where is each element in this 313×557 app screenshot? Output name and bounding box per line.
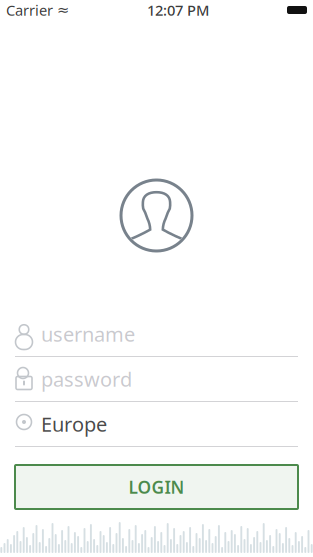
staticText: LOGIN <box>128 475 184 498</box>
staticText: password <box>41 366 132 392</box>
staticText: username <box>41 321 135 347</box>
staticText: 12:07 PM <box>147 0 209 20</box>
staticText: Europe <box>41 411 107 437</box>
staticText: ≈ <box>57 2 69 18</box>
button[interactable]: LOGIN <box>15 465 298 509</box>
staticText: Carrier <box>6 0 53 20</box>
